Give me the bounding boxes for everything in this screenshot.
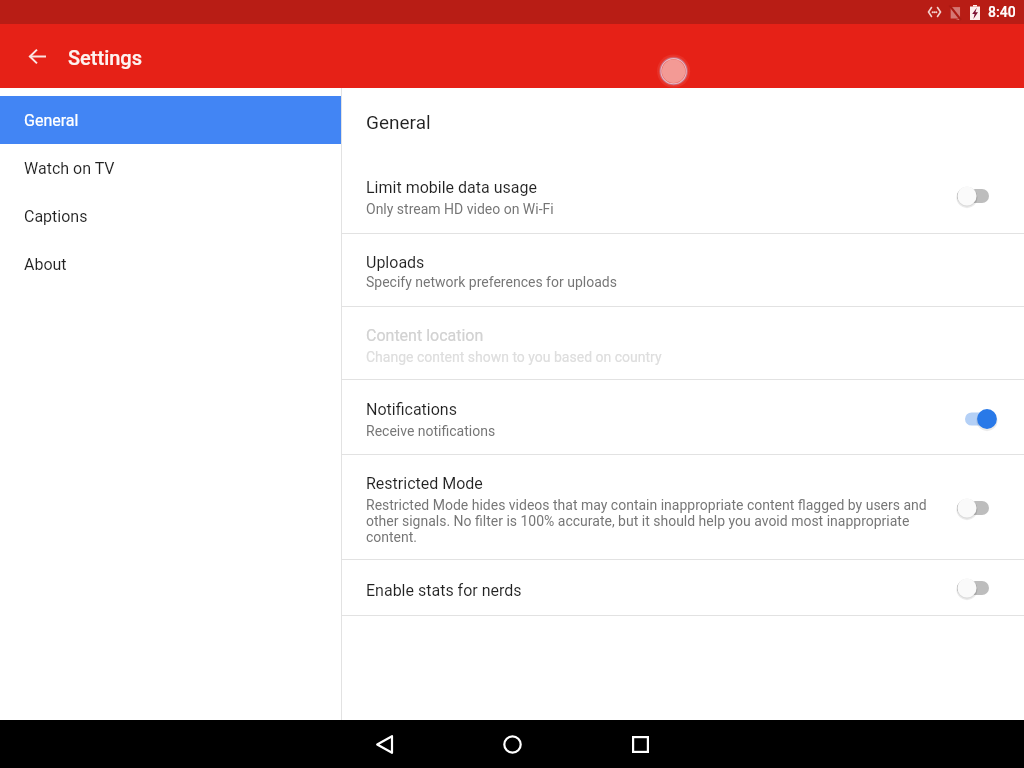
staticText: Change content shown to you based on cou… <box>366 349 662 365</box>
button[interactable]: Limit mobile data usage, off <box>948 180 1000 212</box>
button[interactable]: Back <box>360 720 408 768</box>
staticText: Specify network preferences for uploads <box>366 274 617 290</box>
button[interactable]: Enable stats for nerds, off <box>948 572 1000 604</box>
button[interactable]: Watch on TV <box>0 144 341 192</box>
staticText: Restricted Mode hides videos that may co… <box>366 497 932 545</box>
button[interactable]: Home <box>488 720 536 768</box>
button[interactable]: Restricted Mode, off <box>948 492 1000 524</box>
button[interactable]: Notifications, on <box>948 403 1000 435</box>
staticText: Only stream HD video on Wi-Fi <box>366 201 554 217</box>
button[interactable]: Enable stats for nerds <box>342 560 1024 615</box>
staticText: Settings <box>68 46 143 69</box>
button[interactable]: Content location <box>342 307 1024 379</box>
button[interactable]: General <box>0 96 341 144</box>
staticText: Content location <box>366 326 484 345</box>
button[interactable]: Recent apps <box>616 720 664 768</box>
staticText: Notifications <box>366 400 457 419</box>
staticText: About <box>24 255 67 274</box>
button[interactable]: Restricted Mode <box>342 455 1024 559</box>
staticText: 8:40 <box>988 4 1016 20</box>
button[interactable]: Captions <box>0 192 341 240</box>
button[interactable]: Uploads <box>342 234 1024 306</box>
staticText: Restricted Mode <box>366 474 483 493</box>
staticText: Uploads <box>366 253 425 272</box>
button[interactable]: Limit mobile data usage <box>342 156 1024 233</box>
button[interactable]: Notifications <box>342 380 1024 454</box>
button[interactable]: Navigate up <box>17 36 57 76</box>
staticText: General <box>24 111 79 130</box>
button[interactable]: About <box>0 240 341 288</box>
staticText: Captions <box>24 207 88 226</box>
staticText: Receive notifications <box>366 423 496 439</box>
staticText: Watch on TV <box>24 159 115 178</box>
staticText: Limit mobile data usage <box>366 178 537 197</box>
staticText: General <box>366 111 431 133</box>
staticText: Enable stats for nerds <box>366 581 522 600</box>
